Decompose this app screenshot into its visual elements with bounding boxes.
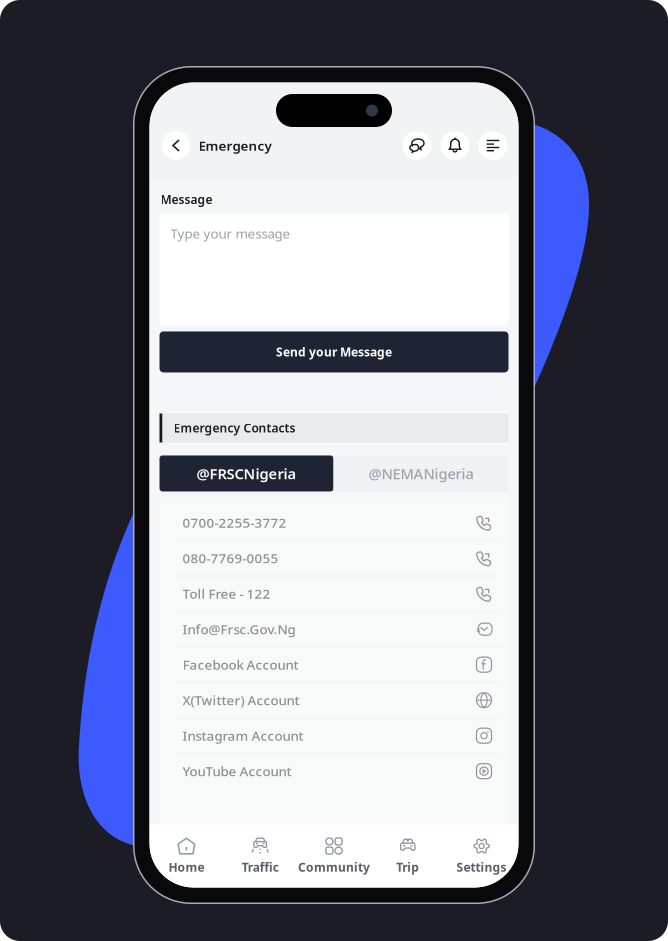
button[interactable]: Send your Message xyxy=(149,331,518,372)
staticText: Emergency xyxy=(198,137,271,154)
staticText: Facebook Account xyxy=(182,656,298,673)
staticText: Info@Frsc.Gov.Ng xyxy=(182,620,295,638)
staticText: Traffic xyxy=(242,859,279,875)
button[interactable]: Trip xyxy=(371,824,445,887)
button[interactable]: Settings xyxy=(445,824,518,887)
staticText: @FRSCNigeria xyxy=(196,464,296,483)
staticText: Type your message xyxy=(170,224,290,242)
button[interactable]: Traffic xyxy=(223,824,297,887)
button[interactable]: Back xyxy=(161,131,190,160)
staticText: Community xyxy=(298,859,370,875)
staticText: 0700-2255-3772 xyxy=(182,514,286,531)
button[interactable]: 080-7769-0055 xyxy=(159,541,508,576)
button[interactable]: Toll Free - 122 xyxy=(159,576,508,612)
button[interactable]: @FRSCNigeria xyxy=(159,455,333,491)
button[interactable]: X(Twitter) Account xyxy=(159,683,508,718)
button[interactable]: Instagram Account xyxy=(159,718,508,754)
staticText: Settings xyxy=(457,859,507,875)
staticText: Trip xyxy=(396,859,419,875)
staticText: Message xyxy=(160,191,212,207)
button[interactable]: 0700-2255-3772 xyxy=(159,505,508,541)
button[interactable]: Facebook Account xyxy=(159,647,508,683)
staticText: @NEMANigeria xyxy=(368,464,473,483)
button[interactable]: Menu xyxy=(478,131,507,160)
button[interactable]: Info@Frsc.Gov.Ng xyxy=(159,612,508,647)
staticText: Home xyxy=(168,859,204,875)
button[interactable]: YouTube Account xyxy=(159,754,508,789)
staticText: X(Twitter) Account xyxy=(182,691,299,709)
button[interactable]: Notifications xyxy=(440,131,469,160)
button[interactable]: Home xyxy=(149,824,223,887)
button[interactable]: @NEMANigeria xyxy=(333,455,508,491)
staticText: 080-7769-0055 xyxy=(182,549,278,567)
staticText: YouTube Account xyxy=(182,762,291,780)
button[interactable]: Community xyxy=(297,824,371,887)
staticText: Instagram Account xyxy=(182,727,303,744)
staticText: Toll Free - 122 xyxy=(182,585,270,602)
button[interactable]: Messages xyxy=(402,131,431,160)
staticText: Send your Message xyxy=(276,344,392,360)
staticText: Emergency Contacts xyxy=(173,420,295,436)
